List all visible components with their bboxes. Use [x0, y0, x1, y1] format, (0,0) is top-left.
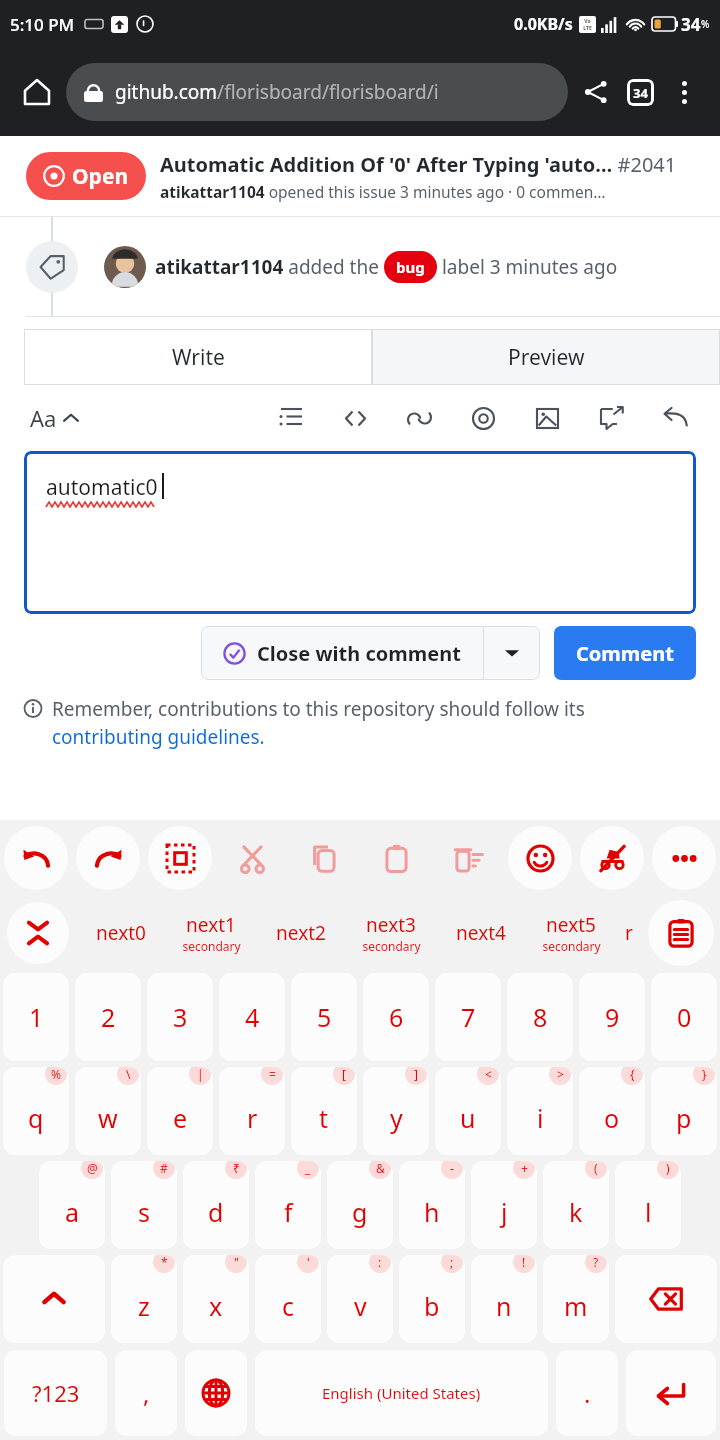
staticText: i: [537, 1101, 544, 1135]
staticText: w: [98, 1101, 118, 1135]
button[interactable]: next4: [436, 896, 526, 970]
button[interactable]: Undo: [0, 820, 72, 896]
button[interactable]: ,: [115, 1350, 177, 1436]
button[interactable]: github.com/florisboard/florisboard/i: [66, 63, 568, 121]
button[interactable]: (: [543, 1161, 609, 1249]
button[interactable]: More close options: [484, 626, 540, 680]
button[interactable]: .: [556, 1350, 618, 1436]
button[interactable]: 8: [507, 973, 573, 1061]
button[interactable]: Write: [24, 329, 372, 385]
button[interactable]: Toggle row: [0, 896, 76, 970]
button[interactable]: *: [111, 1255, 177, 1343]
button[interactable]: Mention: [462, 397, 504, 439]
button[interactable]: Backspace: [615, 1255, 717, 1343]
button[interactable]: Shift: [3, 1255, 105, 1343]
button[interactable]: -: [399, 1161, 465, 1249]
button[interactable]: English (United States): [255, 1350, 548, 1436]
button[interactable]: >: [507, 1067, 573, 1155]
button[interactable]: ]: [363, 1067, 429, 1155]
staticText: f: [284, 1195, 293, 1229]
button[interactable]: Switch language: [185, 1350, 247, 1436]
staticText: 8: [533, 1000, 548, 1034]
button[interactable]: Redo: [72, 820, 144, 896]
staticText: l: [645, 1195, 652, 1229]
staticText: next0: [96, 920, 146, 946]
staticText: |: [197, 1067, 204, 1082]
button[interactable]: =: [219, 1067, 285, 1155]
button[interactable]: Reply: [654, 397, 696, 439]
button[interactable]: More: [648, 820, 720, 896]
button[interactable]: Clear clipboard: [432, 820, 504, 896]
button[interactable]: ): [615, 1161, 681, 1249]
staticText: Open: [72, 162, 129, 191]
button[interactable]: Image: [526, 397, 568, 439]
staticText: }: [702, 1067, 707, 1082]
button[interactable]: 2: [75, 973, 141, 1061]
button[interactable]: next2: [256, 896, 346, 970]
button[interactable]: Code: [334, 397, 376, 439]
button[interactable]: %: [3, 1067, 69, 1155]
button[interactable]: #: [111, 1161, 177, 1249]
button[interactable]: next5: [526, 896, 616, 970]
button[interactable]: Home: [14, 69, 60, 115]
button[interactable]: ?: [543, 1255, 609, 1343]
button[interactable]: :: [327, 1255, 393, 1343]
staticText: next4: [456, 920, 506, 946]
button[interactable]: Close with comment: [201, 626, 483, 680]
button[interactable]: [: [291, 1067, 357, 1155]
button[interactable]: Select all: [144, 820, 216, 896]
button[interactable]: Copy: [288, 820, 360, 896]
staticText: next1: [186, 912, 236, 938]
button[interactable]: <: [435, 1067, 501, 1155]
button[interactable]: 1: [3, 973, 69, 1061]
button[interactable]: !: [471, 1255, 537, 1343]
staticText: atikattar1104 opened this issue 3 minute…: [160, 181, 606, 202]
button[interactable]: Tabs: [618, 70, 662, 114]
button[interactable]: Emoji: [504, 820, 576, 896]
button[interactable]: +: [471, 1161, 537, 1249]
staticText: v: [354, 1289, 367, 1323]
button[interactable]: ?123: [4, 1350, 107, 1436]
button[interactable]: }: [651, 1067, 717, 1155]
button[interactable]: Open: [26, 152, 146, 200]
button[interactable]: 4: [219, 973, 285, 1061]
button[interactable]: 3: [147, 973, 213, 1061]
button[interactable]: Saved reply: [590, 397, 632, 439]
button[interactable]: Clipboard: [642, 896, 720, 970]
button[interactable]: Share: [574, 70, 618, 114]
button[interactable]: bug: [384, 251, 437, 283]
button[interactable]: next3: [346, 896, 436, 970]
button[interactable]: r: [616, 896, 642, 970]
button[interactable]: ;: [399, 1255, 465, 1343]
button[interactable]: Incognito off: [576, 820, 648, 896]
button[interactable]: |: [147, 1067, 213, 1155]
button[interactable]: 0: [651, 973, 717, 1061]
button[interactable]: _: [255, 1161, 321, 1249]
button[interactable]: &: [327, 1161, 393, 1249]
button[interactable]: \: [75, 1067, 141, 1155]
button[interactable]: {: [579, 1067, 645, 1155]
button[interactable]: 7: [435, 973, 501, 1061]
button[interactable]: ₹: [183, 1161, 249, 1249]
button[interactable]: Preview: [372, 329, 720, 385]
staticText: next3: [366, 912, 416, 938]
button[interactable]: next1: [166, 896, 256, 970]
button[interactable]: Link: [398, 397, 440, 439]
button[interactable]: @: [39, 1161, 105, 1249]
staticText: 3: [173, 1000, 188, 1034]
button[interactable]: Comment: [554, 626, 696, 680]
button[interactable]: 6: [363, 973, 429, 1061]
button[interactable]: Aa: [24, 397, 85, 439]
button[interactable]: ': [255, 1255, 321, 1343]
button[interactable]: Cut: [216, 820, 288, 896]
staticText: 5:10 PM: [10, 13, 75, 36]
button[interactable]: ": [183, 1255, 249, 1343]
button[interactable]: Paste: [360, 820, 432, 896]
button[interactable]: More options: [662, 70, 706, 114]
button[interactable]: automatic0: [24, 451, 696, 614]
button[interactable]: next0: [76, 896, 166, 970]
button[interactable]: 9: [579, 973, 645, 1061]
button[interactable]: 5: [291, 973, 357, 1061]
button[interactable]: List: [270, 397, 312, 439]
button[interactable]: Enter: [626, 1350, 716, 1436]
